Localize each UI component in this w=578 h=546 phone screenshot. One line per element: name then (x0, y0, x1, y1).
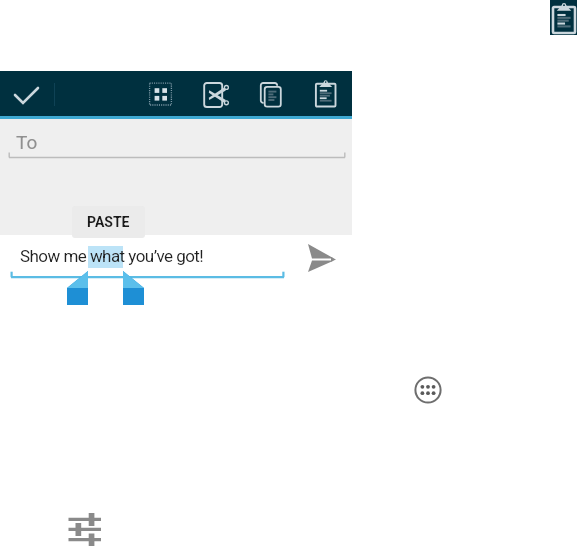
button[interactable]: Settings (66, 508, 104, 546)
button[interactable]: Done (0, 71, 54, 116)
button[interactable]: Paste (313, 79, 341, 107)
button[interactable]: Copy (258, 81, 286, 109)
button[interactable]: Clipboard (550, 0, 577, 35)
other: Selection start handle (66, 271, 90, 307)
staticText: To (16, 131, 38, 153)
button[interactable]: Send (298, 238, 344, 282)
button[interactable]: PASTE (72, 206, 145, 238)
button[interactable]: Select all (147, 81, 175, 109)
staticText: PASTE (87, 214, 130, 230)
other: Selection end handle (122, 271, 146, 307)
button[interactable]: To (8, 123, 346, 159)
staticText: Show me what you’ve got! (20, 246, 204, 266)
button[interactable]: Apps (414, 376, 442, 404)
button[interactable]: Cut (203, 81, 231, 109)
